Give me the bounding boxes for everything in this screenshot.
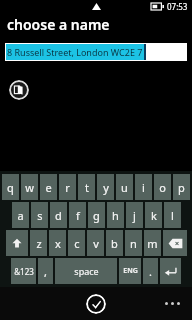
staticText: u — [121, 180, 128, 195]
button[interactable]: r — [59, 174, 76, 200]
button[interactable]: k — [145, 202, 162, 228]
button[interactable]: t — [78, 174, 95, 200]
staticText: z — [36, 236, 42, 251]
button[interactable]: &123 — [11, 258, 36, 284]
button[interactable]: l — [164, 202, 181, 228]
button[interactable]: b — [106, 230, 123, 256]
button[interactable]: h — [107, 202, 124, 228]
button[interactable]: space — [55, 258, 117, 284]
button[interactable]: ENG — [119, 258, 141, 284]
staticText: q — [7, 180, 14, 195]
staticText: , — [44, 264, 47, 279]
button[interactable]: w — [21, 174, 38, 200]
button[interactable]: . — [143, 258, 158, 284]
button[interactable]: Enter — [160, 258, 181, 284]
button[interactable]: i — [135, 174, 152, 200]
staticText: x — [55, 236, 61, 251]
staticText: &123 — [14, 266, 34, 277]
staticText: choose a name — [7, 15, 110, 34]
staticText: p — [178, 180, 185, 195]
staticText: j — [133, 208, 136, 223]
staticText: ENG — [123, 266, 138, 276]
staticText: y — [103, 180, 109, 195]
staticText: a — [17, 208, 24, 223]
staticText: w — [25, 180, 34, 195]
button[interactable]: y — [97, 174, 114, 200]
button[interactable]: z — [30, 230, 47, 256]
button[interactable]: a — [12, 202, 29, 228]
staticText: h — [112, 208, 119, 223]
staticText: s — [37, 208, 43, 223]
button[interactable]: Backspace — [163, 230, 187, 256]
button[interactable]: x — [49, 230, 66, 256]
staticText: 07:53 — [167, 1, 188, 12]
button[interactable]: p — [173, 174, 190, 200]
button[interactable]: f — [69, 202, 86, 228]
button[interactable]: More options — [161, 298, 184, 309]
staticText: b — [111, 236, 118, 251]
button[interactable]: j — [126, 202, 143, 228]
staticText: e — [45, 180, 52, 195]
staticText: space — [74, 265, 99, 277]
button[interactable]: Done — [86, 294, 106, 314]
staticText: r — [65, 180, 70, 195]
staticText: v — [93, 236, 99, 251]
staticText: m — [147, 236, 158, 251]
button[interactable]: n — [125, 230, 142, 256]
button[interactable]: 8 Russell Street, London WC2E 7 — [5, 43, 187, 61]
button[interactable]: d — [50, 202, 67, 228]
staticText: f — [76, 208, 80, 223]
button[interactable]: q — [2, 174, 19, 200]
staticText: 8 Russell Street, London WC2E 7 — [7, 46, 143, 58]
staticText: d — [55, 208, 62, 223]
button[interactable]: s — [31, 202, 48, 228]
button[interactable]: Paste — [9, 80, 29, 100]
button[interactable]: m — [144, 230, 161, 256]
staticText: g — [93, 208, 100, 223]
button[interactable]: v — [87, 230, 104, 256]
staticText: k — [151, 208, 157, 223]
button[interactable]: c — [68, 230, 85, 256]
button[interactable]: u — [116, 174, 133, 200]
button[interactable]: g — [88, 202, 105, 228]
staticText: l — [171, 208, 174, 223]
staticText: . — [149, 264, 152, 279]
staticText: c — [74, 236, 80, 251]
button[interactable]: , — [38, 258, 53, 284]
staticText: n — [130, 236, 137, 251]
button[interactable]: o — [154, 174, 171, 200]
staticText: o — [159, 180, 166, 195]
staticText: t — [85, 180, 89, 195]
button[interactable]: e — [40, 174, 57, 200]
button[interactable]: Shift — [6, 230, 28, 256]
staticText: i — [142, 180, 145, 195]
